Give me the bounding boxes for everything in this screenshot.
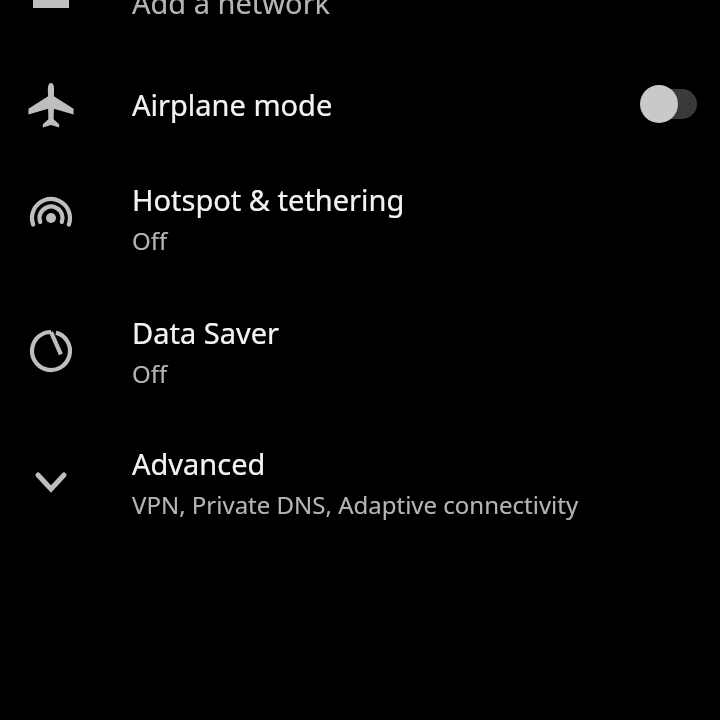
other: Add a network xyxy=(0,0,720,34)
button[interactable]: Expand advanced xyxy=(0,432,720,532)
staticText: Add a network xyxy=(132,0,331,17)
staticText: VPN, Private DNS, Adaptive connectivity xyxy=(132,488,579,521)
staticText: Off xyxy=(132,357,168,390)
other: Expand advanced xyxy=(0,432,102,532)
staticText: Airplane mode xyxy=(132,85,610,124)
other: Hotspot and tethering xyxy=(0,168,102,268)
staticText: Off xyxy=(132,224,168,257)
staticText: Advanced xyxy=(132,444,266,483)
button[interactable]: Hotspot and tethering xyxy=(0,168,720,268)
button[interactable]: Airplane mode xyxy=(0,58,720,150)
staticText: Hotspot & tethering xyxy=(132,180,405,219)
button[interactable]: Data Saver xyxy=(0,301,720,401)
other: Data Saver xyxy=(0,301,102,401)
staticText: Data Saver xyxy=(132,313,279,352)
button[interactable]: Add a network xyxy=(0,0,720,34)
